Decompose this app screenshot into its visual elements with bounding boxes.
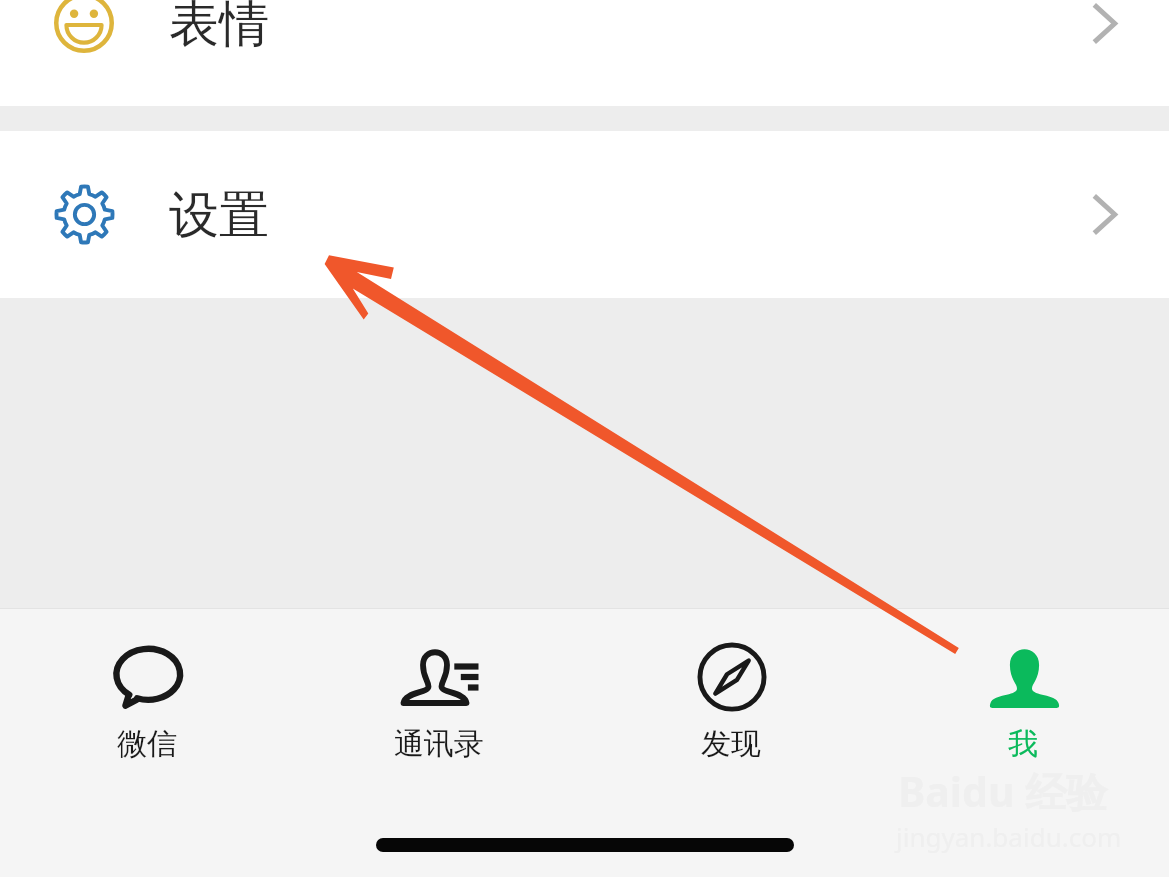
- button[interactable]: 微信: [0, 608, 293, 877]
- staticText: 我: [1008, 725, 1038, 763]
- staticText: 发现: [701, 725, 761, 763]
- button[interactable]: 表情: [0, 0, 1169, 106]
- staticText: 微信: [117, 725, 177, 763]
- staticText: 表情: [169, 0, 269, 56]
- staticText: 设置: [169, 184, 269, 247]
- button[interactable]: 设置: [0, 131, 1169, 298]
- button[interactable]: 发现: [585, 608, 877, 877]
- staticText: 通讯录: [394, 725, 484, 763]
- button[interactable]: 我: [877, 608, 1169, 877]
- button[interactable]: 通讯录: [293, 608, 585, 877]
